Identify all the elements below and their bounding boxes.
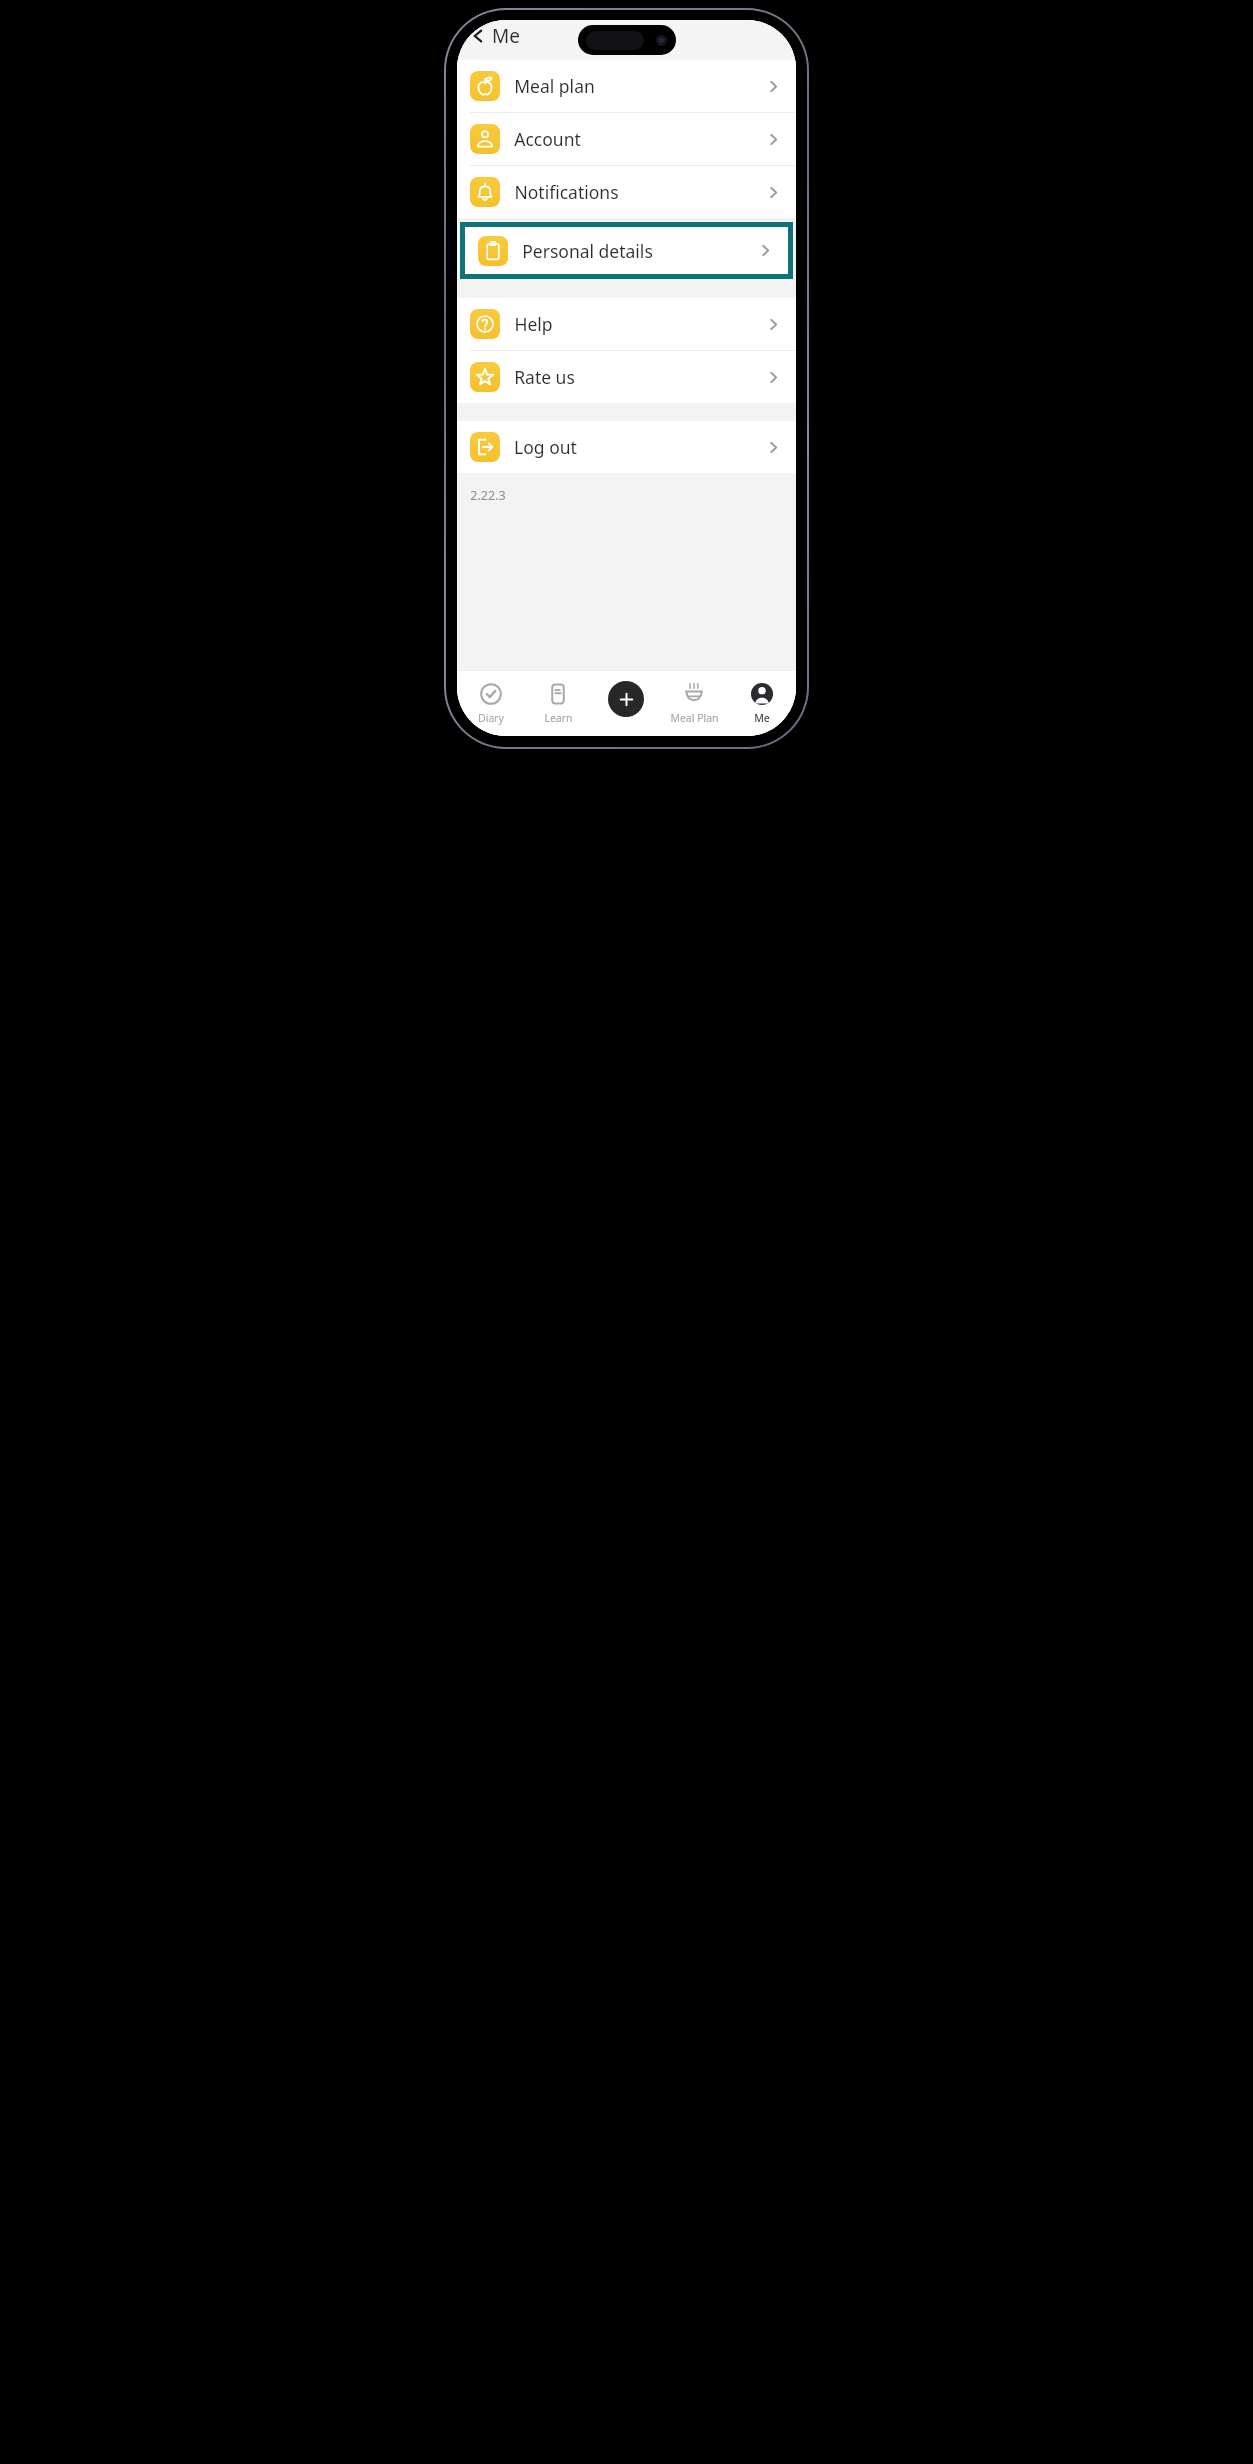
staticText: Meal Plan — [670, 711, 719, 725]
button[interactable]: Rate us — [457, 351, 796, 403]
button[interactable]: Me — [728, 670, 796, 736]
button[interactable]: Back — [466, 21, 524, 51]
staticText: Help — [514, 312, 553, 336]
button[interactable]: Meal plan — [457, 60, 796, 112]
staticText: Me — [754, 711, 770, 725]
staticText: Personal details — [522, 239, 653, 263]
staticText: Notifications — [514, 180, 619, 204]
staticText: Learn — [544, 711, 573, 725]
staticText: Me — [492, 23, 520, 49]
button[interactable]: Diary — [457, 670, 524, 736]
staticText: Rate us — [514, 365, 575, 389]
button[interactable]: Add — [608, 681, 644, 717]
staticText: Meal plan — [514, 74, 595, 98]
button[interactable]: Notifications — [457, 166, 796, 218]
staticText: 2.22.3 — [470, 487, 506, 504]
staticText: Log out — [514, 435, 577, 459]
staticText: Account — [514, 127, 581, 151]
button[interactable]: Help — [457, 298, 796, 350]
button[interactable]: Meal Plan — [660, 670, 728, 736]
button[interactable]: Account — [457, 113, 796, 165]
button[interactable]: Personal details — [465, 227, 788, 274]
staticText: Diary — [478, 711, 504, 725]
button[interactable]: Learn — [524, 670, 592, 736]
button[interactable]: Log out — [457, 421, 796, 473]
